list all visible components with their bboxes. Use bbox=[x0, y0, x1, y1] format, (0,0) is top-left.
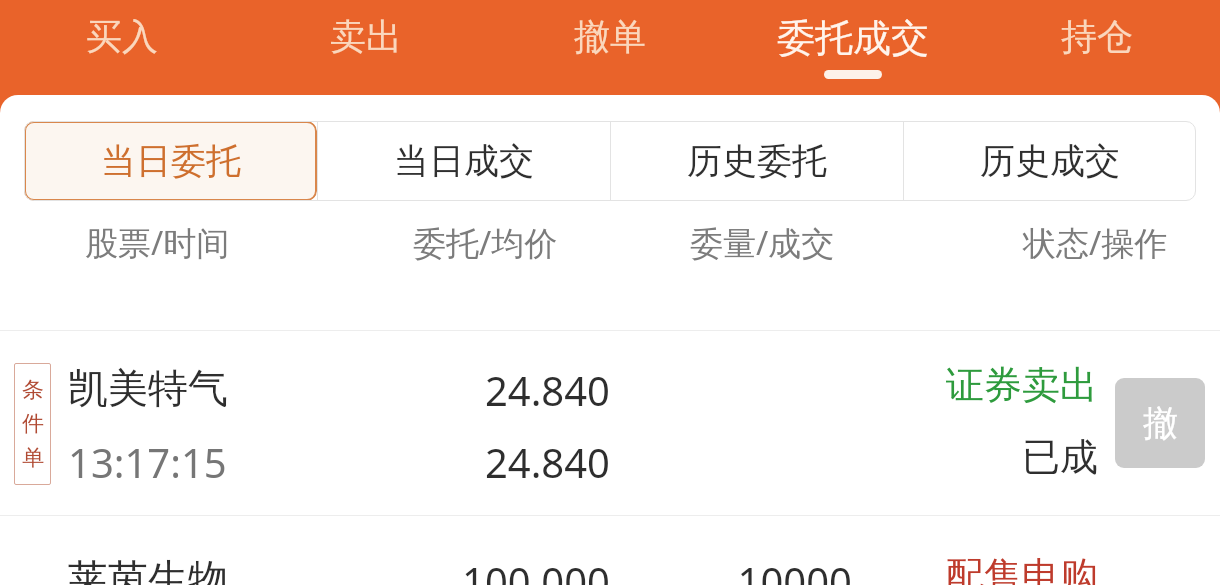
staticText: 10000 bbox=[737, 554, 852, 585]
staticText: 撤单 bbox=[574, 14, 646, 59]
staticText: 100.000 bbox=[462, 554, 610, 585]
staticText: 24.840 bbox=[484, 363, 610, 417]
staticText: 委托/均价 bbox=[413, 220, 558, 265]
staticText: 持仓 bbox=[1061, 14, 1133, 59]
staticText: 当日成交 bbox=[394, 139, 534, 183]
staticText: 当日委托 bbox=[101, 139, 241, 183]
staticText: 件 bbox=[22, 410, 44, 438]
staticText: 已成 bbox=[1022, 433, 1098, 481]
button[interactable]: 买入 bbox=[12, 0, 232, 95]
staticText: 撤 bbox=[1143, 401, 1178, 445]
button[interactable]: 当日委托 bbox=[24, 121, 317, 201]
staticText: 历史委托 bbox=[687, 139, 827, 183]
button[interactable]: 委托成交 bbox=[743, 0, 963, 95]
staticText: 配售申购 bbox=[946, 552, 1098, 585]
staticText: 证券卖出 bbox=[946, 361, 1098, 409]
staticText: 买入 bbox=[86, 14, 158, 59]
staticText: 卖出 bbox=[330, 14, 402, 59]
staticText: 24.840 bbox=[484, 435, 610, 489]
button[interactable]: 历史成交 bbox=[903, 121, 1196, 201]
staticText: 状态/操作 bbox=[1023, 220, 1168, 265]
staticText: 单 bbox=[22, 444, 44, 472]
button[interactable]: 当日成交 bbox=[317, 121, 610, 201]
button[interactable]: 撤单 bbox=[500, 0, 720, 95]
staticText: 凯美特气 bbox=[68, 363, 228, 413]
staticText: 股票/时间 bbox=[85, 220, 230, 265]
button[interactable]: 莱茵生物 bbox=[0, 516, 1220, 585]
staticText: 委托成交 bbox=[777, 14, 929, 62]
staticText: 历史成交 bbox=[980, 139, 1120, 183]
staticText: 委量/成交 bbox=[690, 220, 835, 265]
staticText: 条 bbox=[22, 376, 44, 404]
button[interactable]: 卖出 bbox=[256, 0, 476, 95]
button[interactable]: 持仓 bbox=[987, 0, 1207, 95]
button[interactable]: 撤单 bbox=[1115, 378, 1205, 468]
button[interactable]: 条 bbox=[0, 331, 1220, 515]
staticText: 13:17:15 bbox=[68, 435, 227, 489]
staticText: 莱茵生物 bbox=[68, 554, 228, 585]
button[interactable]: 历史委托 bbox=[610, 121, 903, 201]
